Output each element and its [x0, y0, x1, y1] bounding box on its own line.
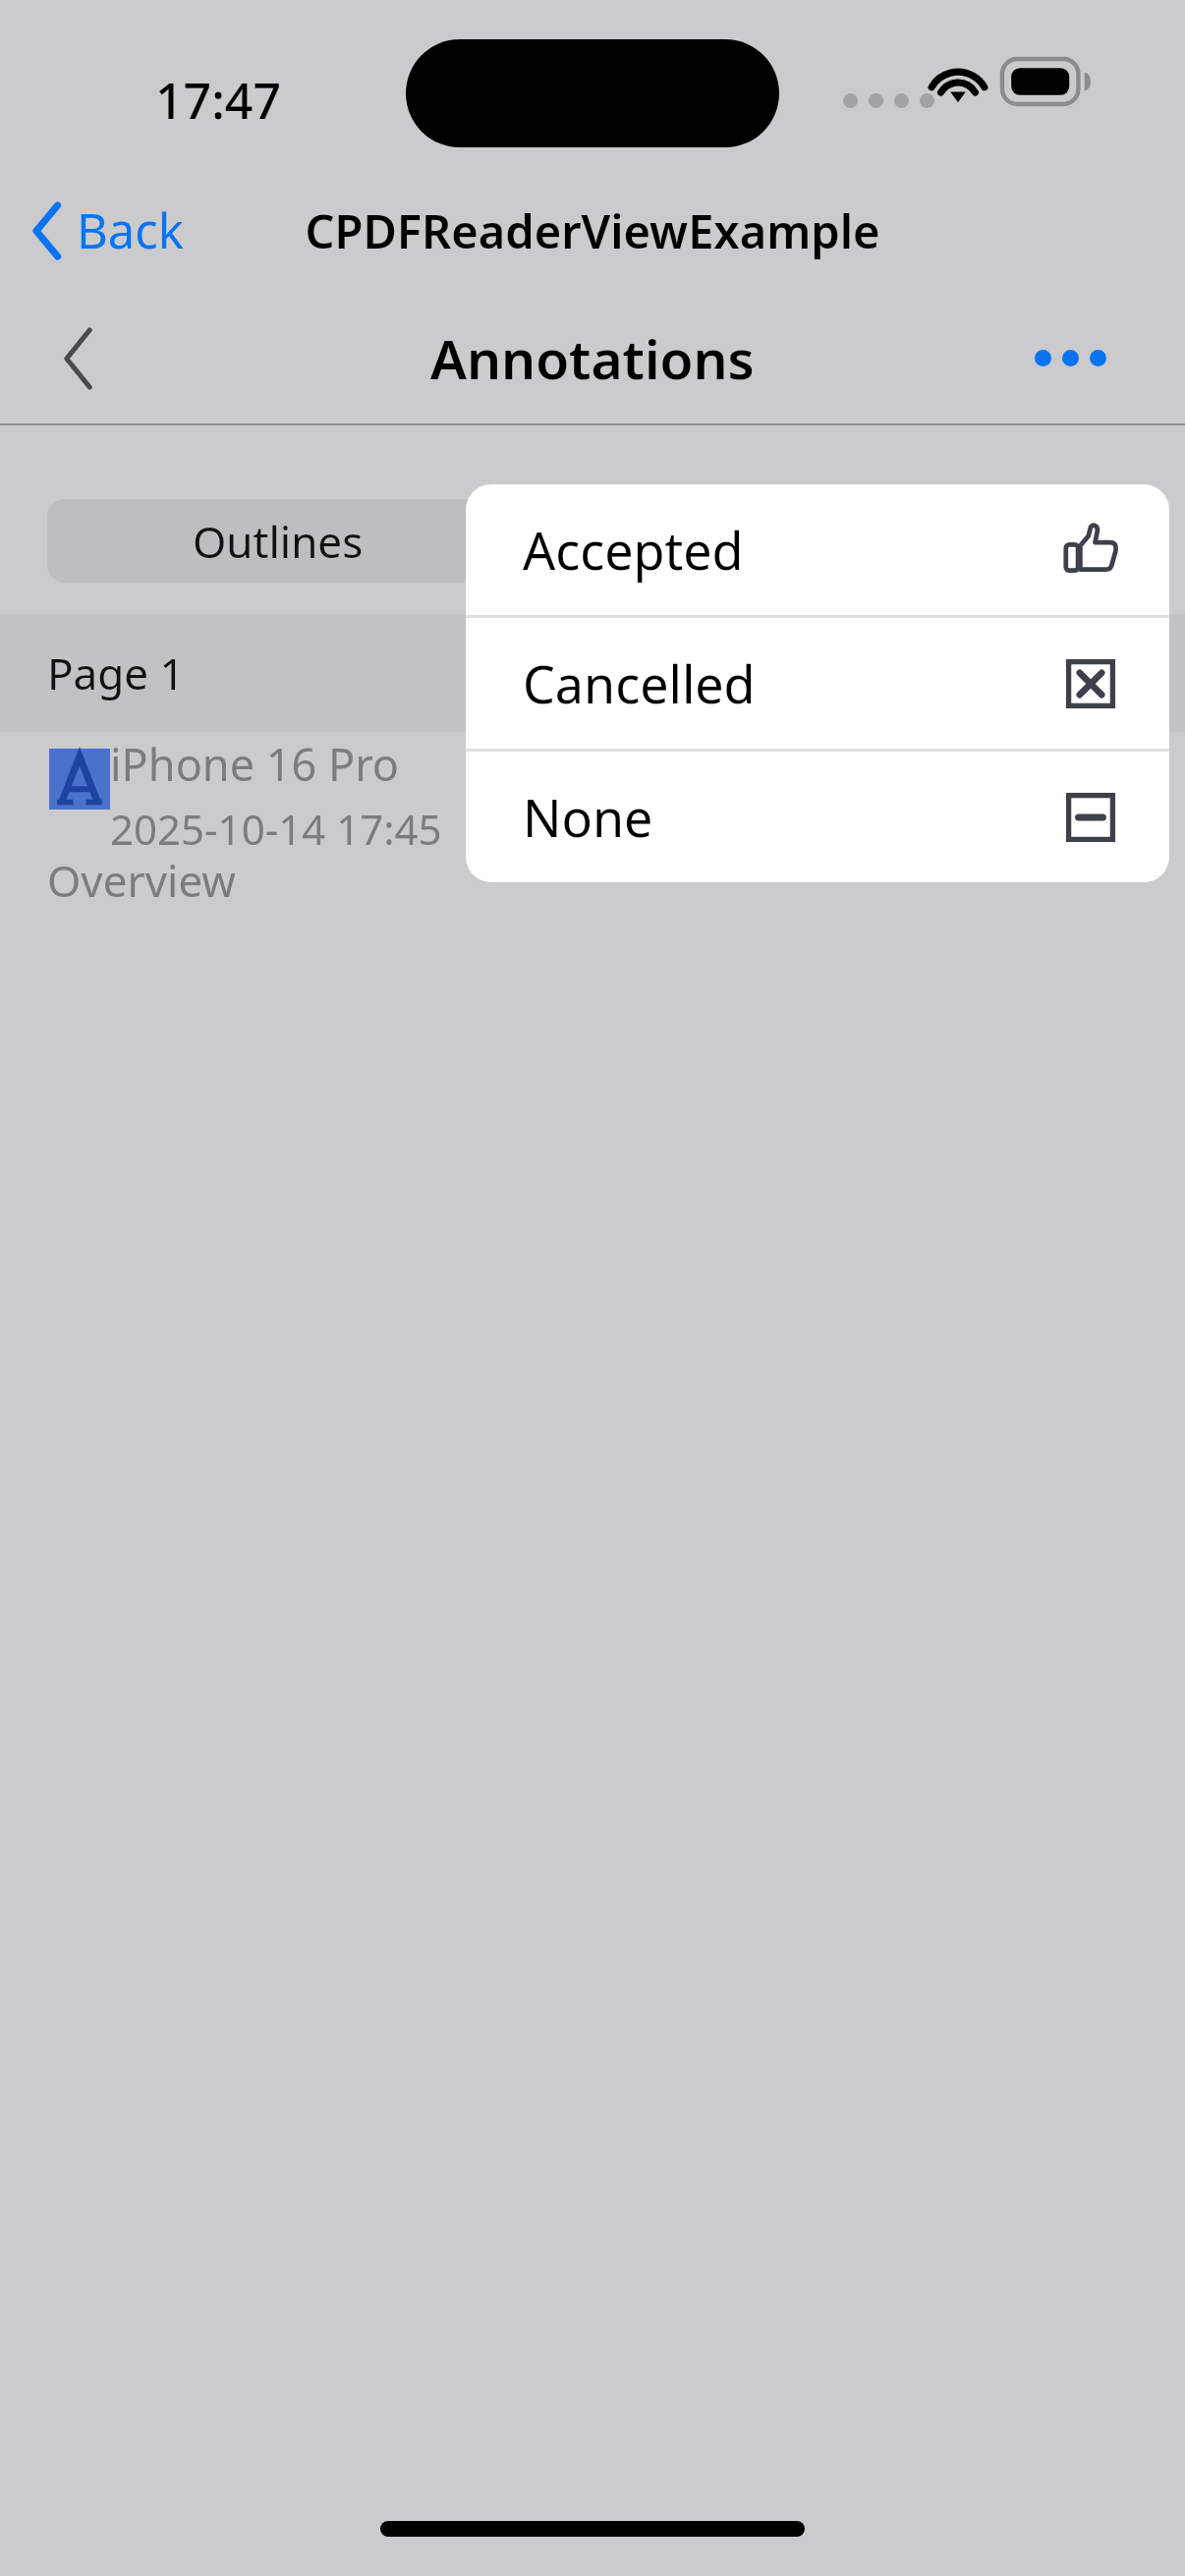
staticText: Outlines: [193, 512, 364, 571]
staticText: 2025-10-14 17:45: [110, 801, 442, 857]
staticText: Cancelled: [523, 648, 756, 718]
staticText: None: [523, 782, 653, 852]
staticText: iPhone 16 Pro: [110, 734, 400, 794]
button[interactable]: None: [466, 752, 1169, 882]
staticText: Page 1: [47, 644, 185, 702]
button[interactable]: iPhone 16 Pro: [0, 732, 1185, 909]
staticText: Accepted: [523, 515, 744, 585]
staticText: Annotations: [430, 321, 755, 395]
button[interactable]: More options: [1017, 324, 1124, 392]
button[interactable]: Back: [20, 188, 198, 273]
button[interactable]: Back: [29, 309, 128, 408]
button[interactable]: Accepted: [466, 484, 1169, 615]
staticText: CPDFReaderViewExample: [305, 199, 880, 262]
staticText: Back: [77, 197, 185, 263]
button[interactable]: Outlines: [47, 499, 509, 583]
button[interactable]: Cancelled: [466, 618, 1169, 749]
staticText: Overview: [47, 851, 236, 910]
staticText: 17:47: [155, 67, 281, 134]
